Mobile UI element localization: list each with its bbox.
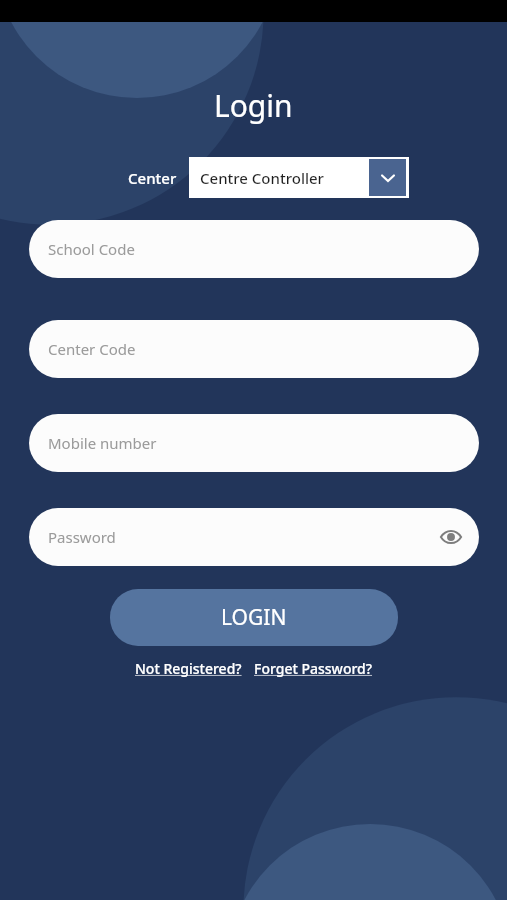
button[interactable]: Center Code [29,320,479,378]
staticText: School Code [48,239,135,259]
button[interactable]: Forget Password? [253,657,374,680]
staticText: Mobile number [48,433,157,453]
button[interactable]: LOGIN [110,589,398,646]
staticText: Centre Controller [200,168,324,188]
staticText: Not Registered? [135,659,242,678]
staticText: Center [128,168,177,188]
staticText: Login [214,85,293,126]
other: Open center dropdown [369,159,406,196]
button[interactable]: Password [29,508,479,566]
button[interactable]: Mobile number [29,414,479,472]
staticText: Password [48,527,116,547]
staticText: LOGIN [221,603,287,632]
button[interactable]: School Code [29,220,479,278]
button[interactable]: Centre Controller [189,157,409,198]
staticText: Forget Password? [254,659,373,678]
staticText: Center Code [48,339,136,359]
button[interactable]: Show password [429,515,473,559]
button[interactable]: Not Registered? [134,657,243,680]
